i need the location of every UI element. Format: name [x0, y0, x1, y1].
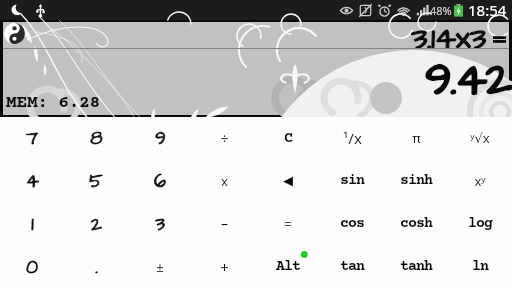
button[interactable]: –	[192, 202, 256, 245]
button[interactable]: =	[256, 202, 320, 245]
staticText: 8	[90, 125, 103, 151]
button[interactable]: tanh	[384, 245, 448, 288]
staticText: π	[412, 129, 421, 147]
staticText: .	[95, 254, 98, 280]
staticText: 9.42	[425, 48, 511, 113]
staticText: 4	[26, 168, 39, 194]
staticText: =	[284, 215, 292, 233]
staticText: 0	[26, 254, 38, 280]
button[interactable]: π	[384, 117, 448, 159]
staticText: Alt	[276, 258, 300, 275]
other: Night mode	[10, 4, 23, 17]
button[interactable]: sinh	[384, 159, 448, 202]
button[interactable]: 6	[128, 159, 192, 202]
button[interactable]: 0	[0, 245, 64, 288]
staticText: .	[95, 254, 98, 280]
staticText: 5	[89, 168, 103, 194]
staticText: 1	[31, 211, 34, 237]
button[interactable]: 1	[0, 202, 64, 245]
button[interactable]: 7	[0, 117, 64, 159]
button[interactable]: 2	[64, 202, 128, 245]
button[interactable]: .	[64, 245, 128, 288]
staticText: 1	[31, 211, 34, 237]
staticText: 7	[26, 125, 38, 151]
button[interactable]: 9	[128, 117, 192, 159]
button[interactable]: xʸ	[448, 159, 512, 202]
button[interactable]: tan	[320, 245, 384, 288]
staticText: 4	[26, 168, 39, 194]
staticText: 3.14x3	[411, 16, 486, 60]
staticText: 9.42	[425, 48, 511, 113]
staticText: tan	[340, 258, 364, 275]
button[interactable]: 5	[64, 159, 128, 202]
staticText: 2	[91, 211, 102, 237]
staticText: 48%	[430, 3, 452, 18]
staticText: cos	[340, 215, 364, 232]
staticText: log	[468, 215, 492, 232]
staticText: ÷	[220, 129, 229, 148]
staticText: 9	[155, 125, 166, 151]
staticText: 6	[154, 168, 166, 194]
staticText: sinh	[400, 172, 432, 189]
staticText: ◀	[283, 173, 293, 188]
staticText: 3	[155, 211, 165, 237]
button[interactable]: ◀	[256, 159, 320, 202]
staticText: C	[284, 130, 292, 147]
staticText: ±	[156, 258, 164, 276]
button[interactable]: +	[192, 245, 256, 288]
staticText: 6	[154, 168, 166, 194]
staticText: ʸ√x	[470, 129, 490, 147]
staticText: 3	[155, 211, 165, 237]
staticText: 9	[155, 125, 166, 151]
button[interactable]: ¹/x	[320, 117, 384, 159]
button[interactable]: 8	[64, 117, 128, 159]
staticText: 5	[89, 168, 103, 194]
staticText: 8	[90, 125, 103, 151]
staticText: 7	[26, 125, 38, 151]
button[interactable]: ln	[448, 245, 512, 288]
staticText: 0	[26, 254, 38, 280]
staticText: xʸ	[474, 172, 486, 190]
staticText: MEM: 6.28	[6, 93, 100, 113]
staticText: x	[221, 172, 228, 190]
staticText: sin	[340, 172, 364, 189]
staticText: tanh	[400, 258, 432, 275]
staticText: +	[220, 257, 229, 277]
button[interactable]: log	[448, 202, 512, 245]
button[interactable]: Alt	[256, 245, 320, 288]
other: USB connected	[34, 4, 47, 17]
staticText: ln	[472, 258, 488, 275]
staticText: 18:54	[468, 0, 507, 20]
button[interactable]: cos	[320, 202, 384, 245]
staticText: 2	[91, 211, 102, 237]
button[interactable]: 3	[128, 202, 192, 245]
button[interactable]: cosh	[384, 202, 448, 245]
staticText: ¹/x	[343, 128, 362, 148]
button[interactable]: 4	[0, 159, 64, 202]
button[interactable]: sin	[320, 159, 384, 202]
staticText: cosh	[400, 215, 432, 232]
button[interactable]: x	[192, 159, 256, 202]
button[interactable]: ʸ√x	[448, 117, 512, 159]
staticText: –	[221, 214, 228, 233]
button[interactable]: ÷	[192, 117, 256, 159]
button[interactable]: C	[256, 117, 320, 159]
button[interactable]: ±	[128, 245, 192, 288]
staticText: 3.14x3	[411, 16, 486, 60]
